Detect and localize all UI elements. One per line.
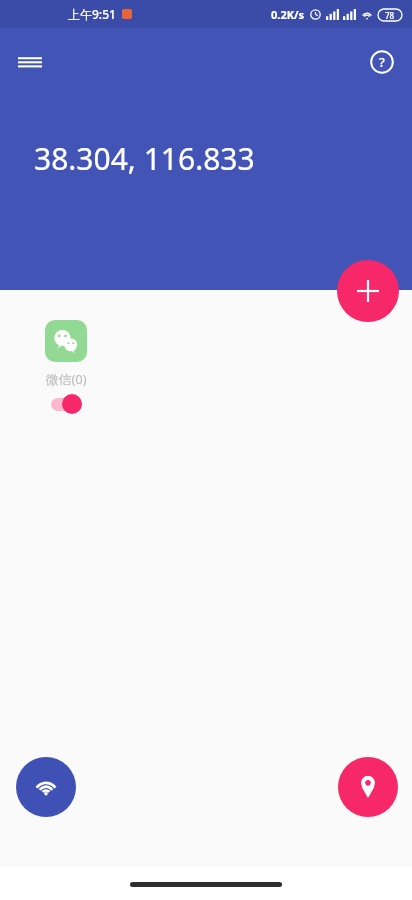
staticText: 0.2K/s [271,7,305,22]
button[interactable]: WiFi [16,757,76,817]
button[interactable]: Add [337,260,399,322]
staticText: 上午9:51 [68,6,116,22]
button[interactable]: 微信(0) [30,320,102,414]
button[interactable]: Help [360,40,404,84]
staticText: 78 [385,10,395,21]
staticText: 微信(0) [45,370,87,388]
staticText: 38.304, 116.833 [34,138,255,179]
staticText: ? [379,53,385,71]
button[interactable]: Toggle WeChat [49,394,83,414]
button[interactable]: Location [338,757,398,817]
button[interactable]: Menu [8,40,52,84]
